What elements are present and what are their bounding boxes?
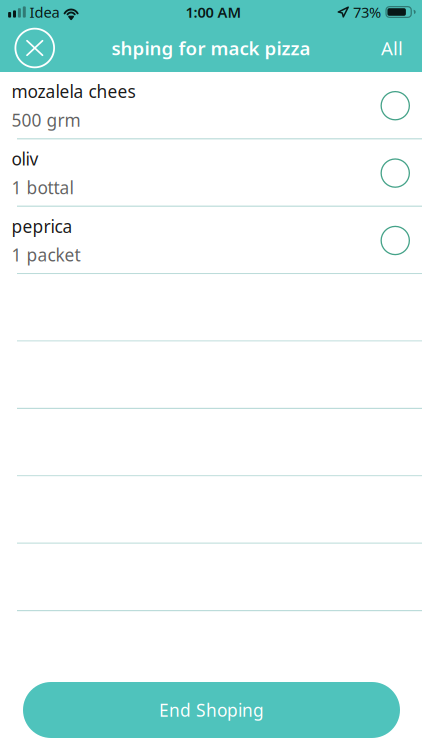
staticText: End Shoping	[159, 698, 264, 721]
button[interactable]: End Shoping	[23, 682, 400, 738]
staticText: peprica	[11, 215, 72, 238]
button[interactable]: mozalela chees	[0, 72, 422, 139]
staticText: oliv	[11, 147, 38, 170]
staticText: 1 packet	[11, 243, 80, 266]
button[interactable]: All	[381, 36, 403, 60]
staticText: 500 grm	[11, 108, 80, 131]
staticText: 1:00 AM	[185, 2, 241, 22]
staticText: shping for mack pizza	[111, 36, 310, 60]
button[interactable]: Close	[14, 28, 55, 68]
staticText: mozalela chees	[11, 80, 135, 103]
staticText: Idea	[30, 2, 60, 22]
button[interactable]: peprica	[0, 207, 422, 274]
staticText: 1 bottal	[11, 176, 73, 199]
staticText: All	[381, 36, 403, 60]
staticText: 73%	[353, 2, 381, 22]
button[interactable]: oliv	[0, 139, 422, 207]
